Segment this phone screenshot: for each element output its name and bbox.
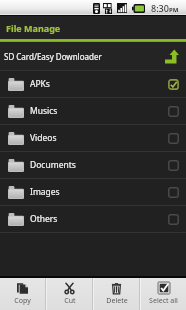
button[interactable]: Select all [141,278,186,310]
staticText: Copy [14,296,31,306]
staticText: PM [169,6,179,14]
staticText: Musics [30,105,58,117]
button[interactable]: Select true [168,79,179,90]
staticText: APKs [30,78,50,90]
button[interactable]: Videos [0,125,186,151]
button[interactable]: Others [0,206,186,232]
button[interactable]: Documents [0,152,186,178]
button[interactable]: Up one level [163,47,181,65]
staticText: Delete [106,296,128,306]
button[interactable]: Copy [0,278,45,310]
button[interactable]: APKs [0,71,186,97]
button[interactable]: Select false [168,133,179,144]
staticText: 8:30 [151,2,169,14]
staticText: Images [30,186,60,198]
button[interactable]: Images [0,179,186,205]
button[interactable]: Musics [0,98,186,124]
button[interactable]: Select false [168,160,179,171]
staticText: Select all [149,296,178,306]
button[interactable]: Select false [168,214,179,225]
staticText: File Manage [6,22,61,34]
staticText: Videos [30,132,57,144]
staticText: Cut [64,296,76,306]
staticText: SD Card/Easy Downloader [4,51,102,62]
button[interactable]: Delete [94,278,139,310]
staticText: Documents [30,159,76,171]
button[interactable]: Select false [168,106,179,117]
button[interactable]: Select false [168,187,179,198]
staticText: Others [30,213,58,225]
button[interactable]: Cut [47,278,92,310]
